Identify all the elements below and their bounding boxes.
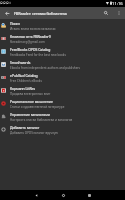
staticText: Smashwords <box>10 60 31 65</box>
staticText: Feedbooks Feed for the best new books <box>10 53 66 57</box>
button[interactable]: Search <box>100 7 112 19</box>
staticText: Поиск <box>10 21 21 26</box>
staticText: FeedBooks OPDS Catalog <box>10 47 51 52</box>
button[interactable]: Back <box>29 190 43 200</box>
button[interactable]: Smashwords <box>0 58 125 71</box>
staticText: Книжная сеть FBReader9 <box>10 34 51 39</box>
staticText: Искать книги во всех каталогах <box>10 27 56 31</box>
button[interactable]: Добавить каталог <box>0 123 125 136</box>
button[interactable]: FeedBooks OPDS Catalog <box>0 45 125 58</box>
staticText: fbreader.org@gmail.com <box>10 40 45 44</box>
button[interactable]: ePubBud Catalog <box>0 71 125 84</box>
button[interactable]: More options <box>112 7 125 19</box>
button[interactable]: Поиск <box>0 19 125 32</box>
staticText: Free Children's eBooks <box>10 79 42 83</box>
staticText: FBReader: сетевая библиотека <box>14 11 67 16</box>
staticText: Добавить каталог <box>10 125 40 130</box>
staticText: Управление каталогами <box>10 112 50 117</box>
button[interactable]: Recent apps <box>82 190 96 200</box>
staticText: ePubBud Catalog <box>10 73 38 78</box>
button[interactable]: Home <box>56 190 70 200</box>
staticText: Продажа электронных книг <box>10 92 51 96</box>
button[interactable]: Карманн LitRes <box>0 84 125 97</box>
staticText: Ebooks from independent authors and publ… <box>10 66 81 70</box>
button[interactable]: Navigate up <box>0 7 14 19</box>
staticText: Рациональное мышление <box>10 99 53 104</box>
staticText: 11:16 <box>112 1 123 7</box>
button[interactable]: Книжная сеть FBReader9 <box>0 32 125 45</box>
button[interactable]: Управление каталогами <box>0 110 125 123</box>
staticText: Карманн LitRes <box>10 86 36 91</box>
staticText: Настроить списки библиотеки и каталогов <box>10 118 73 122</box>
button[interactable]: Рациональное мышление <box>0 97 125 110</box>
staticText: Добавить OPDS каталог вручную <box>10 131 58 135</box>
staticText: Статьи о художественной литературе <box>10 105 65 109</box>
